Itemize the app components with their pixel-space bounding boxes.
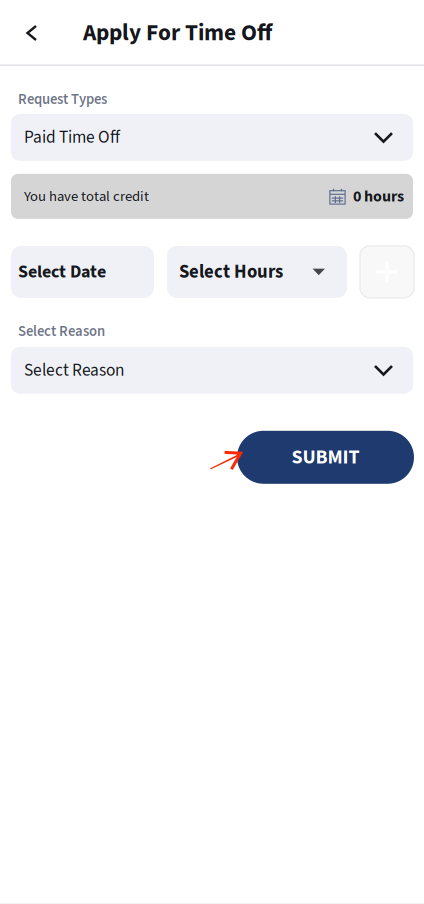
staticText: Select Reason [24, 358, 124, 383]
button[interactable]: Select Reason [11, 347, 413, 394]
staticText: You have total credit [24, 186, 149, 207]
staticText: Apply For Time Off [83, 16, 272, 50]
button[interactable]: Select Date [11, 246, 154, 298]
staticText: Request Types [18, 89, 107, 110]
button[interactable]: Paid Time Off [11, 114, 413, 161]
staticText: Select Date [18, 259, 106, 285]
staticText: SUBMIT [291, 443, 359, 471]
button[interactable]: Select Hours [167, 246, 347, 298]
button[interactable]: Back [0, 0, 83, 66]
button[interactable]: Add [360, 246, 414, 298]
staticText: Select Hours [179, 259, 283, 285]
staticText: Select Reason [18, 321, 105, 342]
staticText: Paid Time Off [24, 125, 120, 150]
staticText: 0 hours [353, 185, 404, 208]
button[interactable]: SUBMIT [237, 431, 414, 484]
